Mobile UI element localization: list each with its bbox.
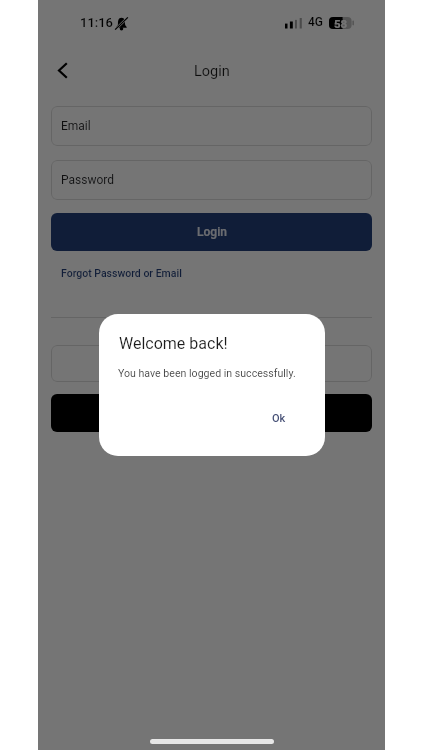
staticText: Forgot Password or Email <box>61 267 182 279</box>
button[interactable]: Ok <box>254 403 304 434</box>
staticText: 4G <box>308 15 323 29</box>
staticText: Welcome back! <box>119 334 228 353</box>
staticText: 11:16 <box>80 15 114 30</box>
button[interactable] <box>51 345 372 382</box>
button[interactable]: Login <box>51 213 372 251</box>
staticText: Ok <box>272 412 286 425</box>
staticText: Password <box>61 173 115 187</box>
button[interactable]: Password <box>51 160 372 200</box>
staticText: 58 <box>334 17 348 29</box>
button[interactable]: Forgot Password or Email <box>51 264 192 282</box>
staticText: You have been logged in successfully. <box>118 367 296 379</box>
staticText: Email <box>61 119 91 133</box>
button[interactable]: Back <box>46 54 78 86</box>
button[interactable]: Email <box>51 106 372 146</box>
button[interactable] <box>51 394 372 432</box>
staticText: Login <box>197 225 227 239</box>
staticText: Login <box>194 63 230 80</box>
